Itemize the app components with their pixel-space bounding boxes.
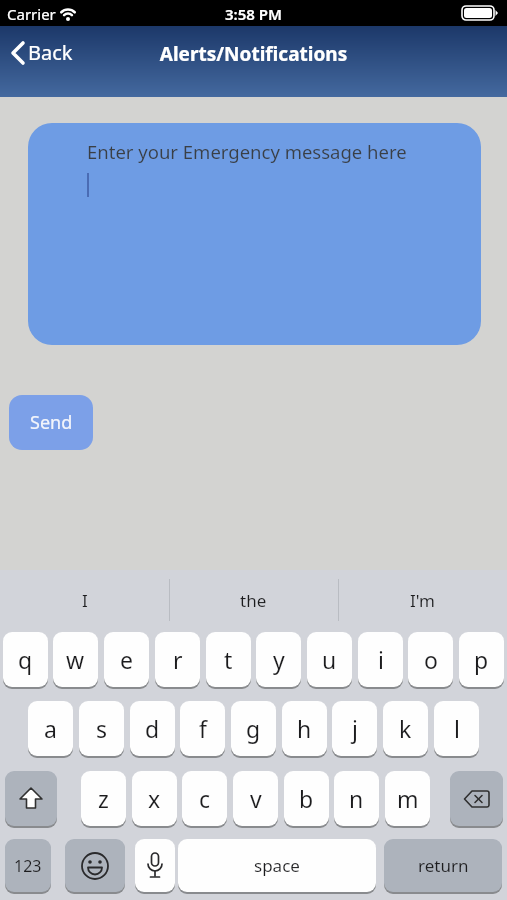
button[interactable]: m bbox=[385, 771, 430, 826]
staticText: c bbox=[199, 783, 211, 814]
button[interactable] bbox=[5, 771, 57, 826]
staticText: u bbox=[322, 644, 337, 675]
button[interactable]: i bbox=[358, 632, 403, 687]
staticText: n bbox=[349, 783, 364, 814]
button[interactable]: k bbox=[383, 701, 428, 756]
button[interactable]: v bbox=[233, 771, 278, 826]
button[interactable]: Back bbox=[10, 39, 73, 66]
button[interactable]: b bbox=[284, 771, 329, 826]
staticText: Back bbox=[28, 39, 73, 66]
staticText: f bbox=[199, 713, 207, 744]
staticText: Enter your Emergency message here bbox=[87, 139, 407, 164]
staticText: p bbox=[474, 644, 489, 675]
staticText: e bbox=[120, 644, 133, 675]
staticText: space bbox=[254, 854, 300, 877]
button[interactable]: the bbox=[169, 570, 338, 630]
button[interactable]: l bbox=[434, 701, 479, 756]
staticText: r bbox=[173, 644, 183, 675]
button[interactable]: e bbox=[104, 632, 149, 687]
staticText: the bbox=[240, 589, 267, 612]
button[interactable]: s bbox=[79, 701, 124, 756]
staticText: k bbox=[399, 713, 412, 744]
button[interactable]: p bbox=[459, 632, 504, 687]
button[interactable]: a bbox=[28, 701, 73, 756]
staticText: j bbox=[352, 713, 358, 744]
staticText: I'm bbox=[410, 589, 435, 612]
staticText: d bbox=[145, 713, 160, 744]
button[interactable] bbox=[135, 839, 175, 892]
button[interactable]: f bbox=[180, 701, 225, 756]
button[interactable]: 123 bbox=[5, 839, 51, 892]
staticText: 123 bbox=[14, 855, 42, 877]
staticText: l bbox=[454, 713, 460, 744]
staticText: return bbox=[418, 854, 469, 877]
staticText: y bbox=[273, 644, 285, 675]
staticText: z bbox=[98, 783, 109, 814]
staticText: q bbox=[18, 644, 33, 675]
staticText: w bbox=[66, 644, 85, 675]
staticText: m bbox=[397, 783, 419, 814]
button[interactable]: Enter your Emergency message here bbox=[28, 123, 481, 345]
button[interactable]: z bbox=[81, 771, 126, 826]
button[interactable]: I'm bbox=[338, 570, 507, 630]
staticText: t bbox=[224, 644, 233, 675]
button[interactable]: h bbox=[282, 701, 327, 756]
button[interactable]: I bbox=[0, 570, 169, 630]
staticText: h bbox=[297, 713, 312, 744]
button[interactable]: c bbox=[182, 771, 227, 826]
button[interactable] bbox=[450, 771, 503, 826]
staticText: a bbox=[44, 713, 57, 744]
staticText: x bbox=[148, 783, 161, 814]
staticText: 3:58 PM bbox=[0, 4, 507, 24]
staticText: v bbox=[250, 783, 262, 814]
button[interactable]: q bbox=[3, 632, 48, 687]
button[interactable]: j bbox=[332, 701, 377, 756]
staticText: b bbox=[299, 783, 314, 814]
button[interactable]: r bbox=[155, 632, 200, 687]
staticText: o bbox=[424, 644, 438, 675]
staticText: i bbox=[378, 644, 384, 675]
button[interactable]: g bbox=[231, 701, 276, 756]
button[interactable] bbox=[65, 839, 125, 892]
button[interactable]: u bbox=[307, 632, 352, 687]
button[interactable]: t bbox=[206, 632, 251, 687]
button[interactable]: w bbox=[53, 632, 98, 687]
button[interactable]: space bbox=[178, 839, 376, 892]
staticText: I bbox=[82, 589, 88, 612]
staticText: g bbox=[246, 713, 261, 744]
staticText: Carrier bbox=[7, 4, 56, 24]
staticText: Alerts/Notifications bbox=[0, 41, 507, 67]
staticText: Send bbox=[30, 410, 73, 435]
button[interactable]: y bbox=[256, 632, 301, 687]
button[interactable]: o bbox=[408, 632, 453, 687]
button[interactable]: d bbox=[130, 701, 175, 756]
button[interactable]: Send bbox=[9, 395, 93, 450]
button[interactable]: x bbox=[132, 771, 177, 826]
staticText: s bbox=[96, 713, 108, 744]
button[interactable]: n bbox=[334, 771, 379, 826]
button[interactable]: return bbox=[384, 839, 502, 892]
